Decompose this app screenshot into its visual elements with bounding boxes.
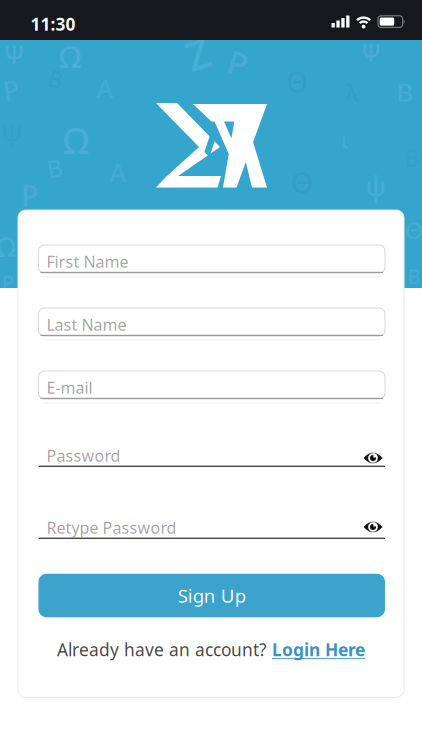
staticText: Password [46, 445, 120, 466]
staticText: 11:30 [30, 12, 75, 35]
staticText: Last Name [46, 314, 126, 335]
staticText: Login Here [272, 638, 365, 661]
button[interactable]: Login Here [272, 638, 365, 661]
staticText: Θ [404, 214, 422, 246]
button[interactable]: Sign Up [38, 574, 385, 617]
staticText: Ω [59, 36, 81, 76]
staticText: Ρ [3, 72, 19, 108]
button[interactable]: Retype Password [38, 511, 385, 539]
staticText: Β [47, 152, 63, 184]
staticText: Ψ [361, 36, 381, 68]
staticText: Α [96, 71, 113, 105]
staticText: E-mail [46, 377, 92, 398]
staticText: Β [48, 64, 63, 94]
staticText: Θ [290, 162, 313, 201]
staticText: Β [407, 263, 420, 289]
button[interactable]: E-mail [38, 371, 385, 399]
staticText: Θ [286, 63, 308, 101]
staticText: Ρ [2, 269, 14, 295]
staticText: Sign Up [178, 583, 246, 608]
staticText: Ρ [21, 175, 39, 214]
staticText: Ρ [228, 42, 248, 84]
staticText: Ψ [3, 37, 24, 71]
button[interactable]: Show password [361, 447, 384, 469]
staticText: Retype Password [46, 517, 176, 538]
staticText: Ω [63, 116, 89, 164]
staticText: Already have an account? [57, 638, 267, 661]
button[interactable]: Last Name [38, 308, 385, 336]
button[interactable]: Show retyped password [361, 516, 384, 538]
staticText: Ζ [186, 27, 209, 80]
staticText: First Name [46, 251, 128, 272]
staticText: ψ [365, 168, 386, 204]
button[interactable]: First Name [38, 245, 385, 273]
button[interactable]: Password [38, 439, 385, 467]
staticText: Ω [0, 229, 15, 265]
staticText: Β [396, 75, 413, 109]
staticText: Α [109, 155, 126, 189]
staticText: ι [341, 126, 349, 154]
